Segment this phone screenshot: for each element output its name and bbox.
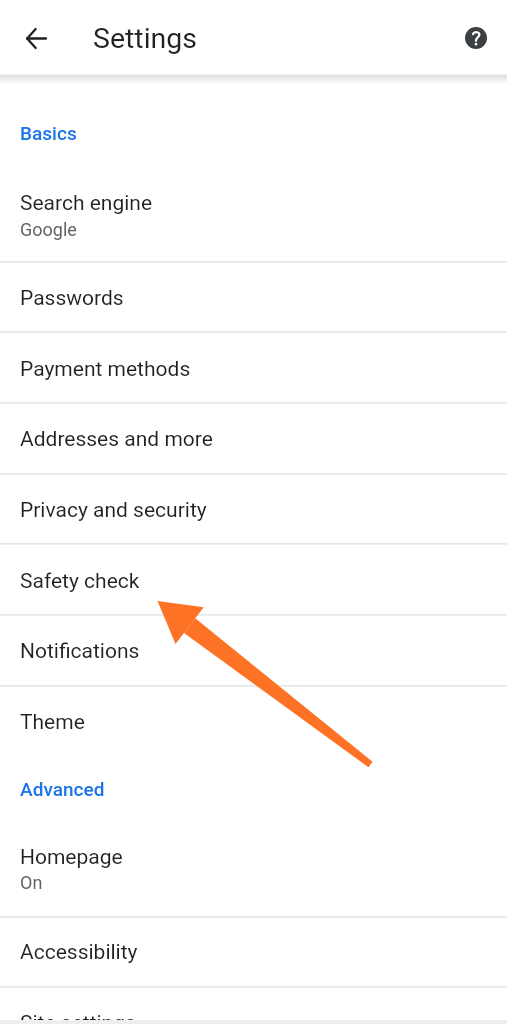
staticText: Notifications	[20, 639, 140, 664]
button[interactable]: Passwords	[0, 262, 507, 332]
staticText: Site settings	[20, 1011, 136, 1024]
staticText: Privacy and security	[20, 498, 207, 523]
button[interactable]: Site settings	[0, 988, 507, 1024]
staticText: Advanced	[20, 778, 105, 800]
button[interactable]: Help and feedback	[452, 14, 500, 62]
staticText: Search engine	[20, 191, 153, 216]
staticText: Accessibility	[20, 940, 138, 965]
button[interactable]: Accessibility	[0, 917, 507, 987]
button[interactable]: Notifications	[0, 615, 507, 685]
button[interactable]: Addresses and more	[0, 403, 507, 473]
button[interactable]: Theme	[0, 686, 507, 756]
staticText: Addresses and more	[20, 427, 213, 452]
staticText: Passwords	[20, 286, 124, 311]
staticText: Google	[20, 219, 77, 240]
staticText: Payment methods	[20, 357, 191, 382]
staticText: On	[20, 872, 43, 893]
button[interactable]: Safety check	[0, 545, 507, 615]
button[interactable]: Homepage	[0, 830, 507, 916]
button[interactable]: Payment methods	[0, 333, 507, 403]
button[interactable]: Privacy and security	[0, 474, 507, 544]
staticText: Basics	[20, 122, 77, 144]
button[interactable]: Navigate up	[12, 14, 60, 62]
staticText: Safety check	[20, 569, 140, 594]
button[interactable]: Search engine	[0, 175, 507, 261]
staticText: Homepage	[20, 845, 123, 870]
staticText: Theme	[20, 710, 85, 735]
staticText: Settings	[93, 22, 198, 55]
